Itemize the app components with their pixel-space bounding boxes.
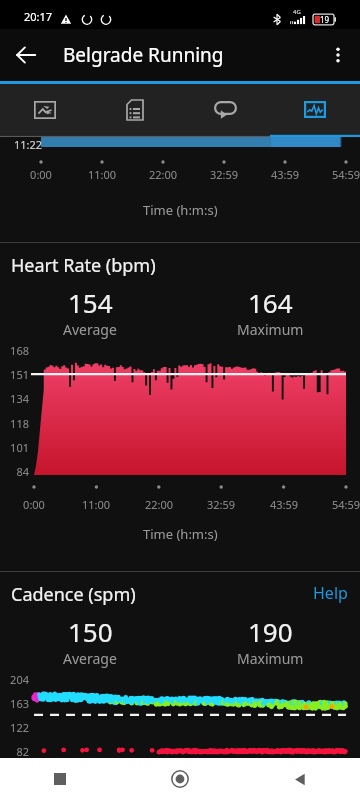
staticText: 11:00 [82,167,122,182]
staticText: 43:59 [265,167,305,182]
button[interactable]: Home [120,758,240,800]
button[interactable]: Map [0,84,90,135]
staticText: 168 [0,343,29,358]
staticText: 0:00 [21,167,61,182]
staticText: 101 [0,440,29,455]
other: Details [127,100,143,120]
staticText: 154 [68,285,113,320]
staticText: 4G [293,8,301,16]
button[interactable]: More options [316,33,360,77]
staticText: Time (h:m:s) [143,525,218,543]
staticText: Maximum [237,649,304,668]
staticText: 204 [0,672,29,687]
staticText: 0:00 [14,497,54,512]
button[interactable]: Back [2,31,50,79]
staticText: 32:59 [201,497,241,512]
staticText: 32:59 [204,167,244,182]
button[interactable]: Laps [180,84,270,135]
staticText: Time (h:m:s) [143,201,218,219]
staticText: Average [63,649,117,668]
staticText: 151 [0,367,29,382]
other: Laps [214,101,237,119]
staticText: 11:00 [76,497,116,512]
staticText: 43:59 [264,497,304,512]
staticText: Belgrade Running [63,42,224,68]
staticText: 118 [0,416,29,431]
staticText: 163 [0,696,29,711]
staticText: Cadence (spm) [11,582,136,607]
staticText: 150 [68,614,113,649]
staticText: 20:17 [24,9,53,24]
other: Charts [304,101,326,118]
button[interactable]: Recent apps [0,758,120,800]
staticText: 190 [248,614,293,649]
staticText: Maximum [237,320,304,339]
staticText: 122 [0,720,29,735]
staticText: 54:59 [326,497,360,512]
staticText: 134 [0,391,29,406]
button[interactable]: Back [240,758,360,800]
staticText: Average [63,320,117,339]
staticText: 11:22 [14,137,43,152]
staticText: 164 [248,285,293,320]
staticText: 54:59 [326,167,360,182]
button[interactable]: Help [301,576,360,610]
staticText: 82 [0,744,29,759]
staticText: 19 [320,14,330,25]
button[interactable]: Details [90,84,180,135]
staticText: 84 [0,464,29,479]
staticText: Help [313,582,348,604]
button[interactable]: Charts [270,84,360,135]
staticText: Heart Rate (bpm) [11,253,156,278]
staticText: 22:00 [143,167,183,182]
other: Map [34,101,56,119]
staticText: 22:00 [139,497,179,512]
